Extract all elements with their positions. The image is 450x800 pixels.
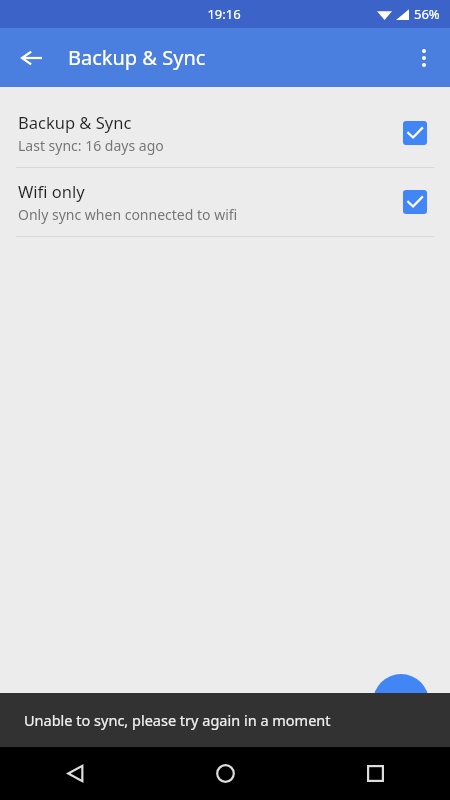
staticText: 19:16 (207, 5, 241, 23)
button[interactable]: Backup & Sync (0, 99, 450, 167)
staticText: Only sync when connected to wifi (18, 205, 238, 224)
button[interactable]: Enabled (403, 190, 427, 214)
staticText: Backup & Sync (18, 111, 132, 133)
button[interactable]: Unable to sync, please try again in a mo… (0, 693, 450, 747)
button[interactable]: Sync now (373, 674, 429, 730)
staticText: Unable to sync, please try again in a mo… (24, 710, 331, 730)
button[interactable]: Wifi only (0, 168, 450, 236)
staticText: 56% (414, 5, 440, 23)
staticText: Backup & Sync (68, 44, 206, 71)
button[interactable]: Back (8, 34, 56, 82)
button[interactable]: Recents (300, 747, 450, 800)
button[interactable]: Back (0, 747, 150, 800)
button[interactable]: Home (150, 747, 300, 800)
button[interactable]: Enabled (403, 121, 427, 145)
button[interactable]: More options (400, 34, 448, 82)
staticText: Wifi only (18, 180, 85, 202)
staticText: Last sync: 16 days ago (18, 136, 164, 155)
